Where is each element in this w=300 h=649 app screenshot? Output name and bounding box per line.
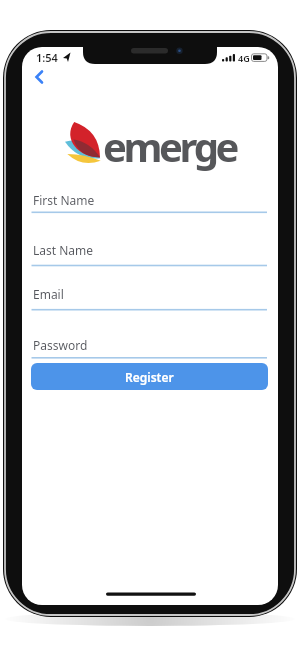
- staticText: Password: [33, 337, 88, 353]
- staticText: Register: [125, 369, 174, 385]
- staticText: First Name: [33, 192, 95, 208]
- button[interactable]: Password: [33, 337, 153, 355]
- staticText: emerge: [103, 119, 236, 173]
- staticText: 1:54: [36, 50, 58, 65]
- staticText: Email: [33, 286, 64, 302]
- button[interactable]: Email: [33, 286, 153, 304]
- button[interactable]: [30, 66, 52, 88]
- staticText: Last Name: [33, 242, 94, 258]
- staticText: 4G: [238, 52, 250, 64]
- button[interactable]: Register: [31, 363, 268, 390]
- button[interactable]: First Name: [33, 192, 153, 210]
- button[interactable]: Last Name: [33, 242, 153, 260]
